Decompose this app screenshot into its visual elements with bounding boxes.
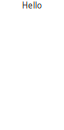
staticText: Hello — [22, 0, 42, 11]
